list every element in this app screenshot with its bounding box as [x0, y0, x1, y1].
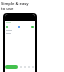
button[interactable]	[5, 65, 18, 69]
staticText: Simple & easy	[1, 1, 29, 6]
staticText: to use	[1, 6, 14, 11]
